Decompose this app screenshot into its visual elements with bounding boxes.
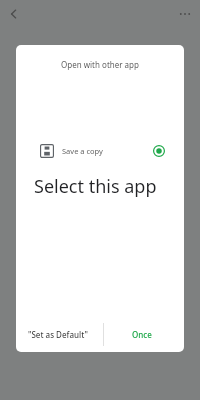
- button[interactable]: Save a copy selected: [151, 143, 167, 159]
- staticText: Open with other app: [16, 59, 184, 70]
- staticText: "Set as Default": [28, 329, 88, 340]
- staticText: Select this app: [34, 174, 157, 199]
- staticText: Save a copy: [62, 146, 103, 156]
- button[interactable]: Once: [100, 321, 184, 348]
- button[interactable]: Back: [2, 2, 26, 26]
- button[interactable]: "Set as Default": [16, 321, 100, 348]
- staticText: Once: [132, 329, 152, 340]
- button[interactable]: More options: [173, 2, 197, 26]
- button[interactable]: Save a copy: [16, 136, 184, 166]
